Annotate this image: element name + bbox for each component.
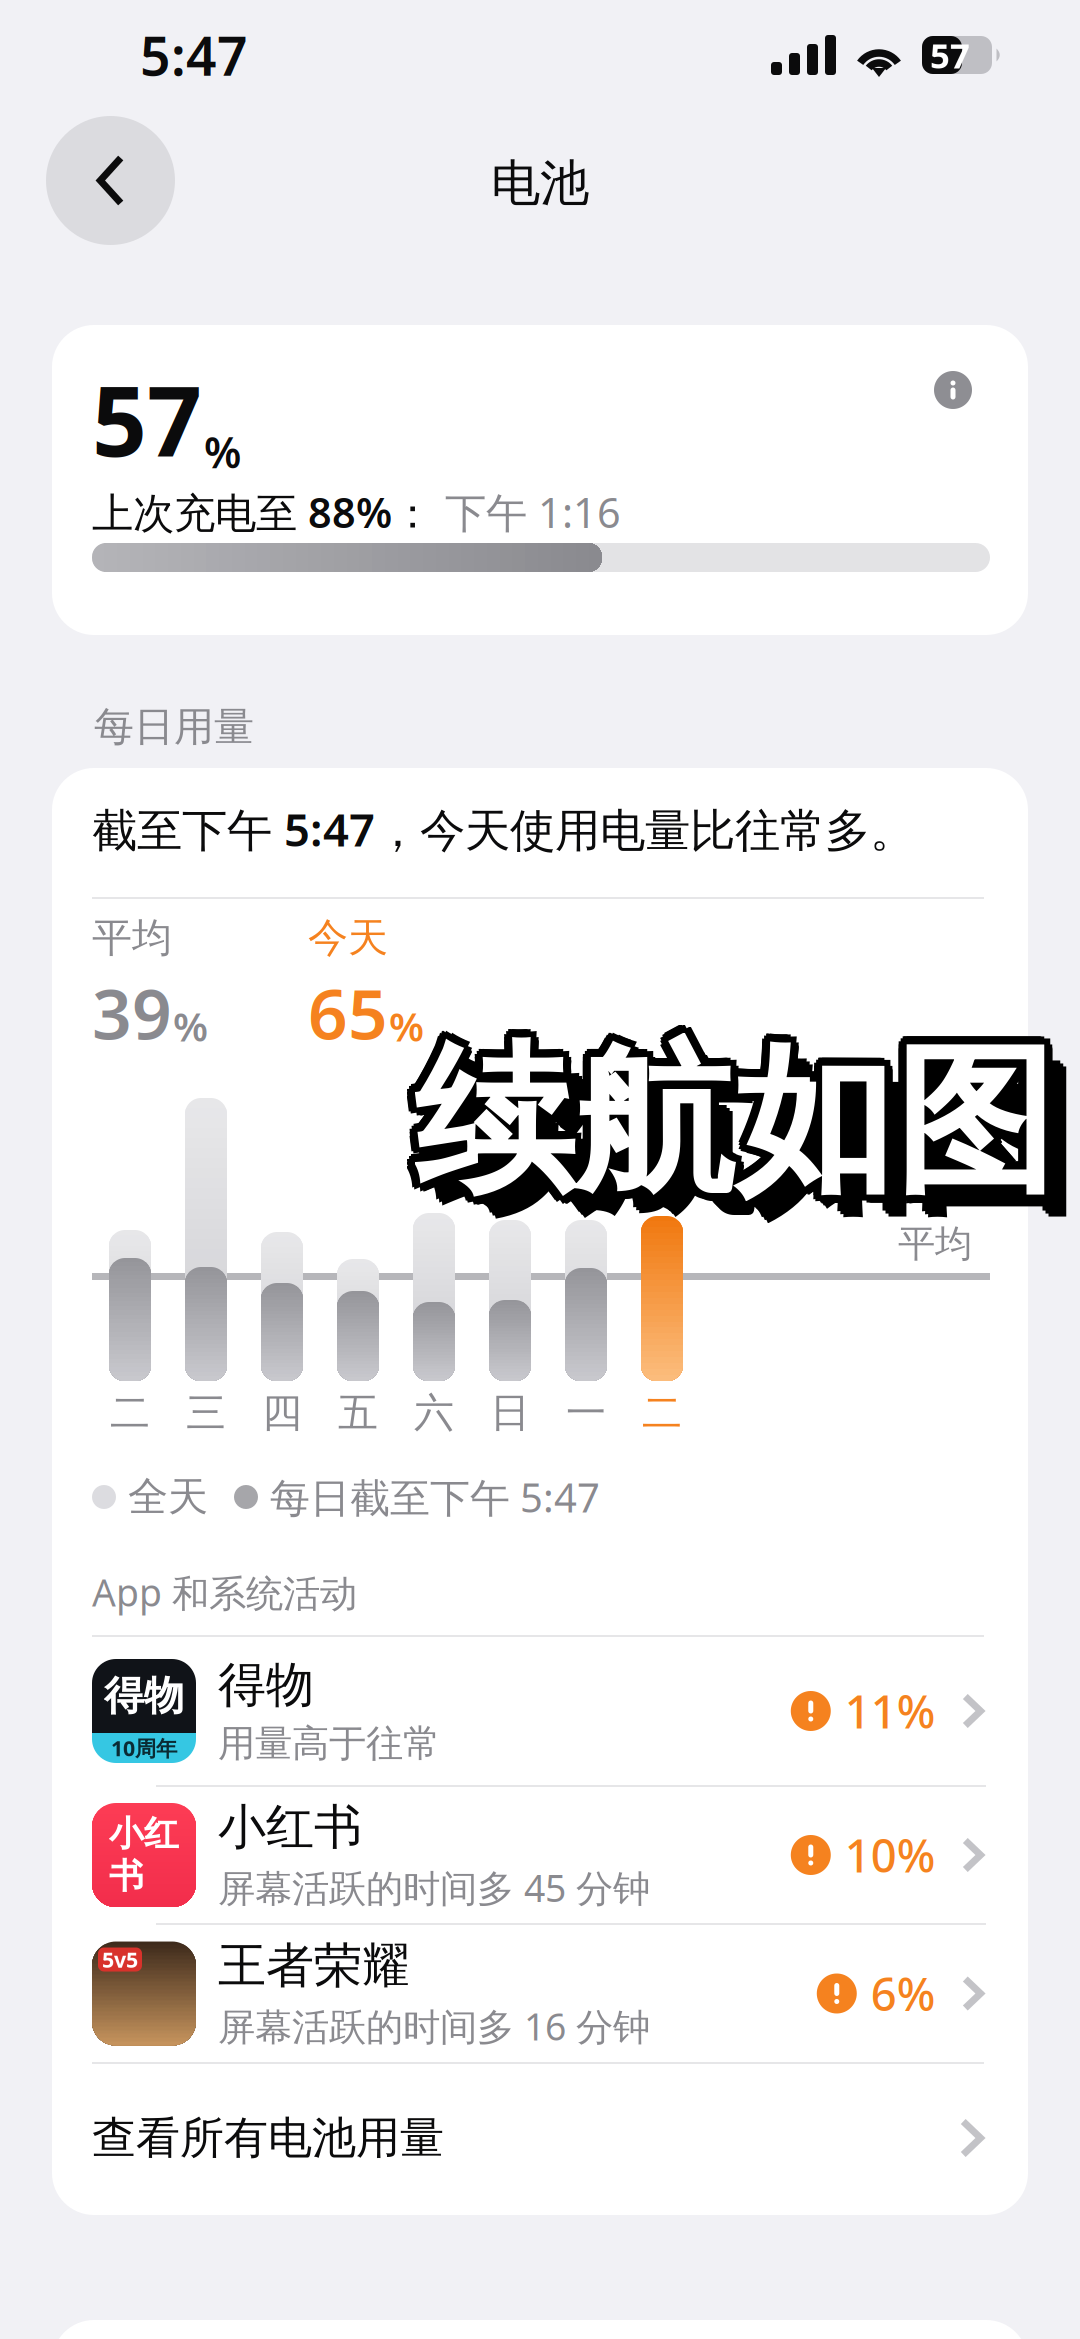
staticText: 续航如图 — [411, 1016, 1051, 1212]
staticText: 二 — [642, 1388, 682, 1437]
staticText: 续航如图 — [422, 1028, 1062, 1224]
staticText: 续航如图 — [418, 1032, 1058, 1228]
staticText: 今天 — [308, 913, 388, 962]
staticText: 每日截至下午 5:47 — [270, 1470, 600, 1523]
staticText: 日 — [490, 1388, 530, 1437]
staticText: 截至下午 5:47，今天使用电量比往常多。 — [92, 799, 915, 859]
staticText: 57 — [92, 355, 202, 483]
staticText: 下午 1:16 — [433, 485, 621, 539]
staticText: 续航如图 — [410, 1016, 1050, 1212]
staticText: 王者荣耀 — [218, 1936, 410, 1995]
staticText: 续航如图 — [433, 1043, 1073, 1239]
staticText: 续航如图 — [406, 1024, 1046, 1220]
staticText: % — [173, 999, 208, 1053]
staticText: 10周年 — [111, 1734, 177, 1762]
button[interactable]: 5v5 — [52, 1925, 1028, 2062]
button[interactable]: 查看所有电池用量 — [52, 2064, 1028, 2212]
staticText: 续航如图 — [436, 1046, 1076, 1242]
staticText: 65 — [308, 966, 388, 1059]
staticText: 5v5 — [102, 1945, 138, 1974]
staticText: 小红书 — [218, 1798, 362, 1857]
staticText: 平均 — [898, 1221, 972, 1267]
staticText: 续航如图 — [422, 1027, 1062, 1223]
staticText: 三 — [186, 1388, 226, 1437]
staticText: 得物 — [104, 1671, 184, 1720]
staticText: 6% — [871, 1963, 936, 2024]
staticText: 39 — [92, 966, 172, 1059]
button[interactable]: 返回 — [46, 116, 175, 245]
staticText: 续航如图 — [408, 1018, 1048, 1214]
staticText: 续航如图 — [414, 1024, 1054, 1220]
staticText: 五 — [338, 1388, 378, 1437]
staticText: 续航如图 — [406, 1021, 1046, 1217]
staticText: 平均 — [92, 913, 172, 962]
staticText: % — [204, 423, 241, 480]
staticText: 续航如图 — [420, 1030, 1060, 1226]
staticText: 每日用量 — [94, 702, 254, 751]
staticText: 11% — [845, 1681, 936, 1741]
staticText: 六 — [414, 1388, 454, 1437]
staticText: 查看所有电池用量 — [92, 2111, 444, 2165]
staticText: 续航如图 — [406, 1028, 1046, 1224]
staticText: 全天 — [128, 1472, 208, 1521]
button[interactable]: 小红书 — [52, 1787, 1028, 1923]
staticText: 屏幕活跃的时间多 16 分钟 — [218, 2001, 650, 2051]
staticText: 续航如图 — [408, 1030, 1048, 1226]
button[interactable]: 电池信息 — [934, 371, 972, 409]
staticText: 5:47 — [140, 20, 248, 90]
staticText: App 和系统活动 — [92, 1567, 357, 1617]
button[interactable]: 得物 — [52, 1637, 1028, 1785]
staticText: 四 — [262, 1388, 302, 1437]
staticText: 小红书 — [109, 1812, 179, 1898]
staticText: 电池 — [491, 153, 589, 214]
staticText: 屏幕活跃的时间多 45 分钟 — [218, 1863, 650, 1912]
staticText: 续航如图 — [417, 1032, 1057, 1228]
staticText: 续航如图 — [414, 1016, 1054, 1212]
staticText: 用量高于往常 — [218, 1721, 440, 1766]
staticText: 续航如图 — [420, 1018, 1060, 1214]
staticText: 57 — [930, 32, 970, 78]
staticText: 续航如图 — [414, 1032, 1054, 1228]
staticText: 上次充电至 88%： — [92, 485, 433, 539]
staticText: 得物 — [218, 1656, 314, 1715]
staticText: 10% — [845, 1825, 936, 1885]
staticText: % — [389, 999, 424, 1053]
staticText: 一 — [566, 1388, 606, 1437]
staticText: 二 — [110, 1388, 150, 1437]
staticText: 续航如图 — [422, 1024, 1062, 1220]
staticText: 续航如图 — [430, 1040, 1070, 1236]
